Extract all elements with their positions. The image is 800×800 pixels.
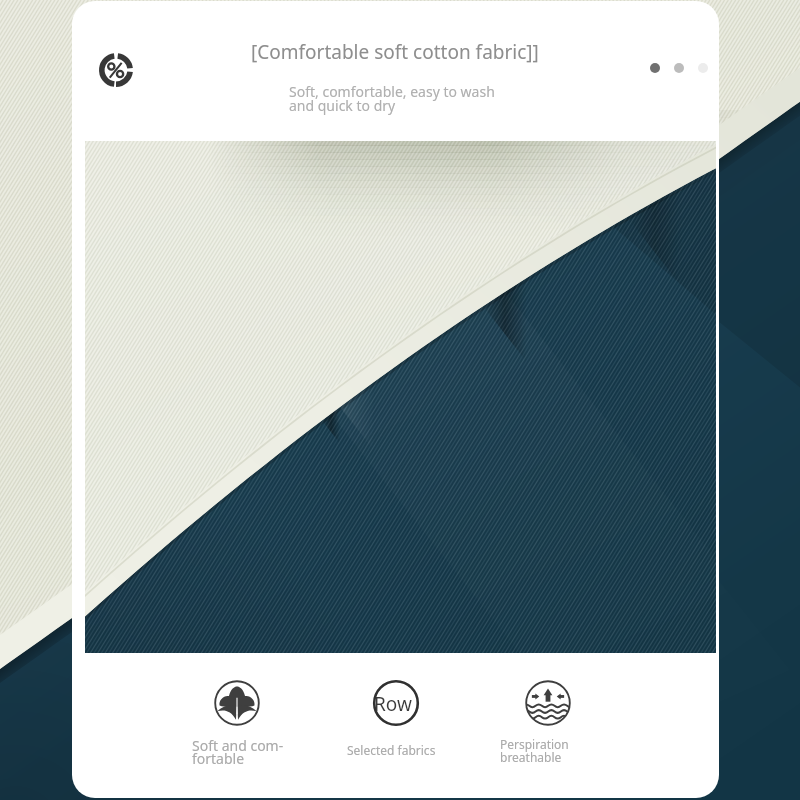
staticText: Soft and com- fortable [192, 736, 284, 768]
staticText: Soft, comfortable, easy to wash and quic… [289, 82, 495, 115]
staticText: Perspiration breathable [500, 736, 569, 765]
button[interactable]: Perspirationbreathable [525, 680, 571, 726]
button[interactable]: Discount [99, 53, 133, 87]
staticText: Row [374, 691, 412, 717]
button[interactable]: Soft and com-fortable [214, 680, 260, 726]
staticText: Selected fabrics [347, 742, 436, 758]
button[interactable]: Selected fabrics [373, 680, 419, 726]
button[interactable]: Page indicator [650, 63, 708, 73]
button[interactable]: [Comfortable soft cotton fabric]] [251, 39, 539, 65]
